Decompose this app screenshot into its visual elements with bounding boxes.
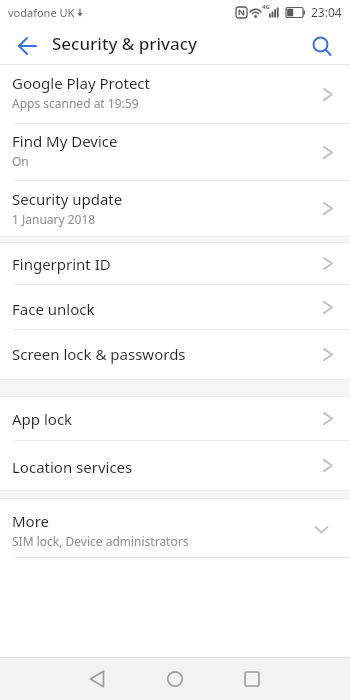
staticText: App lock bbox=[12, 409, 73, 429]
staticText: Screen lock & passwords bbox=[12, 344, 186, 364]
staticText: Security update bbox=[12, 189, 123, 209]
staticText: SIM lock, Device administrators bbox=[12, 533, 189, 549]
staticText: Google Play Protect bbox=[12, 73, 150, 93]
button[interactable]: Security update bbox=[0, 181, 350, 236]
staticText: Find My Device bbox=[12, 131, 118, 151]
staticText: Location services bbox=[12, 457, 133, 477]
staticText: 4G bbox=[262, 3, 270, 11]
staticText: Security & privacy bbox=[52, 32, 198, 55]
staticText: 1 January 2018 bbox=[12, 211, 96, 227]
button[interactable] bbox=[155, 659, 195, 699]
button[interactable]: Screen lock & passwords bbox=[0, 330, 350, 379]
button[interactable] bbox=[77, 659, 117, 699]
staticText: Apps scanned at 19:59 bbox=[12, 95, 139, 111]
button[interactable]: Google Play Protect bbox=[0, 65, 350, 123]
button[interactable]: App lock bbox=[0, 397, 350, 440]
staticText: vodafone UK bbox=[8, 5, 75, 20]
button[interactable] bbox=[304, 27, 340, 63]
staticText: Fingerprint ID bbox=[12, 254, 111, 274]
staticText: 23:04 bbox=[311, 4, 342, 20]
staticText: On bbox=[12, 153, 29, 169]
button[interactable] bbox=[10, 28, 46, 64]
button[interactable]: Location services bbox=[0, 441, 350, 490]
button[interactable]: Fingerprint ID bbox=[0, 243, 350, 284]
staticText: More bbox=[12, 511, 50, 531]
button[interactable] bbox=[232, 659, 272, 699]
button[interactable]: More bbox=[0, 499, 350, 557]
button[interactable]: Face unlock bbox=[0, 285, 350, 329]
staticText: Face unlock bbox=[12, 299, 95, 319]
button[interactable]: Find My Device bbox=[0, 124, 350, 180]
